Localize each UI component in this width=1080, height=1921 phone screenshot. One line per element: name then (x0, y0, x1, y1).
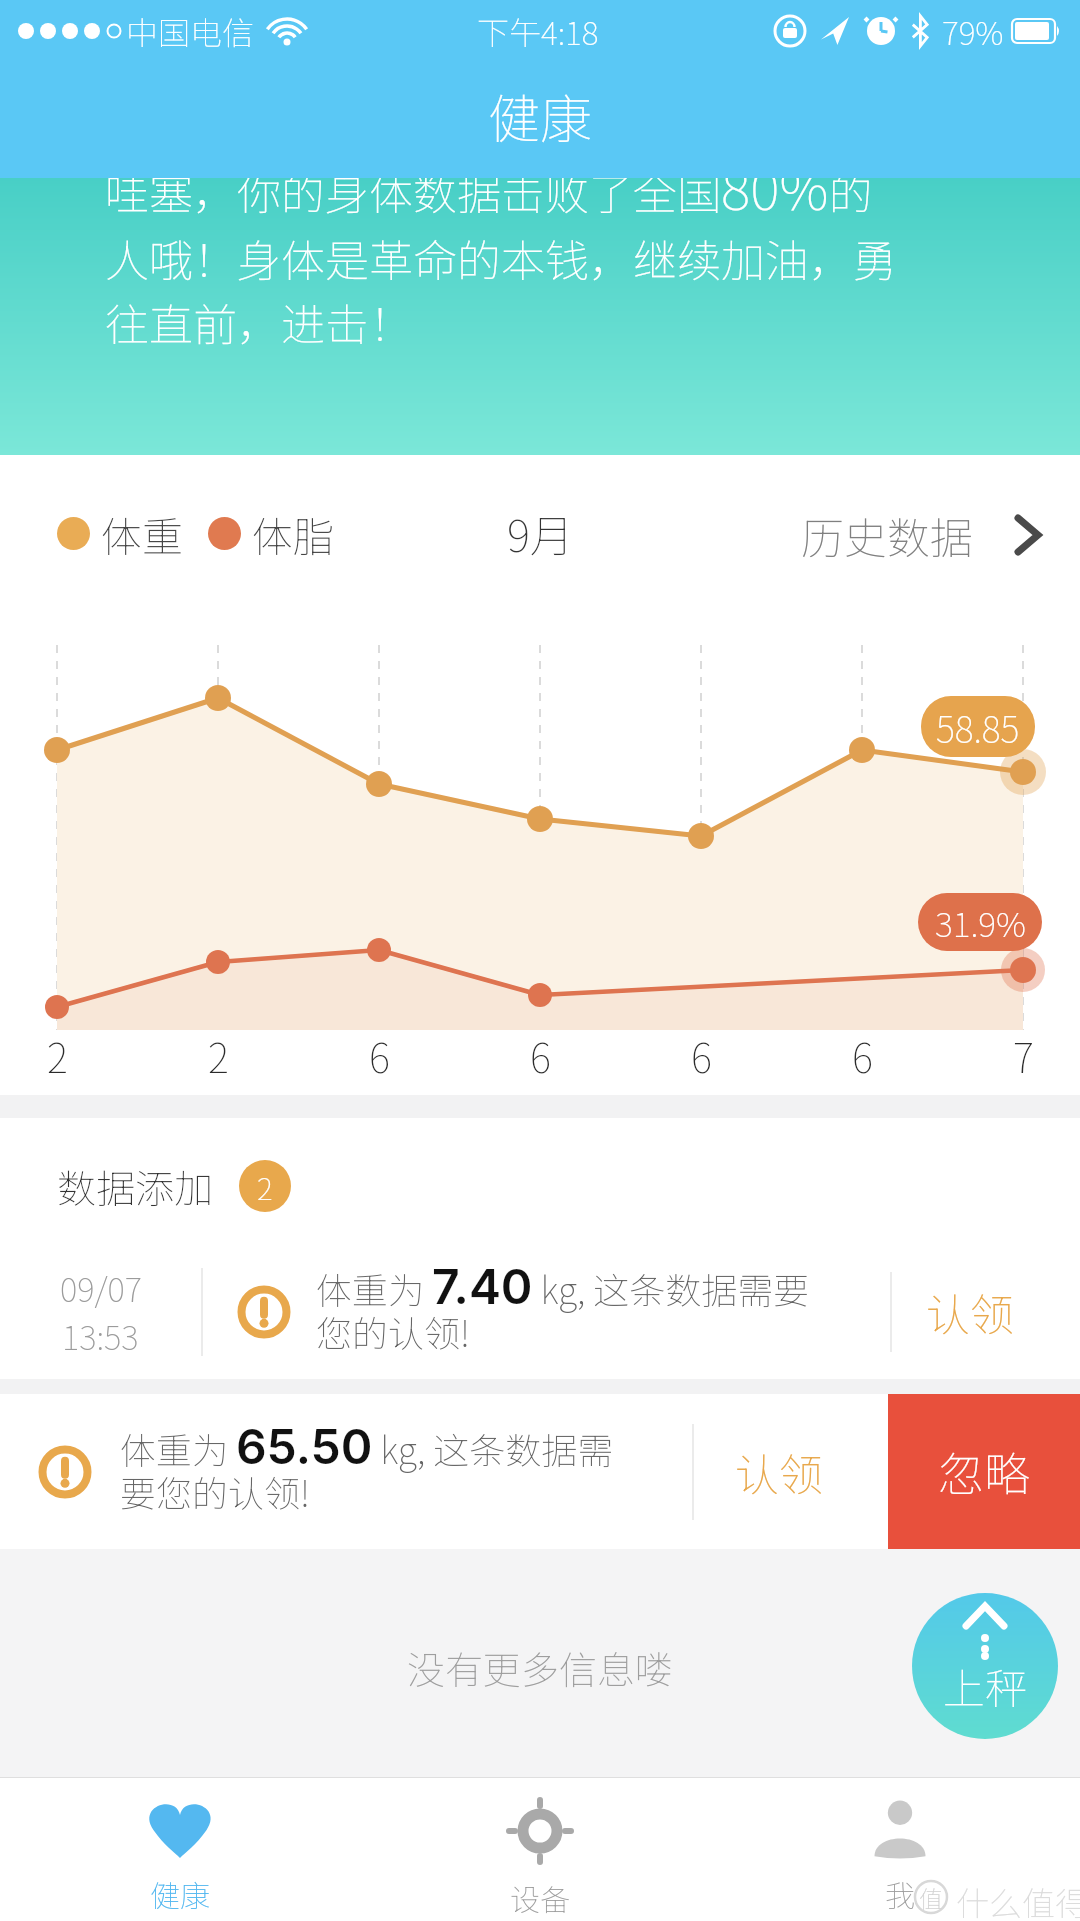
staticText: 没有更多信息喽 (407, 1640, 674, 1695)
button[interactable]: 体重为 65.50 kg, 这条数据需 (0, 1394, 1080, 1549)
staticText: 79% (942, 8, 1004, 54)
staticText: 2 (208, 1027, 229, 1085)
button[interactable]: 忽略 (888, 1394, 1080, 1549)
button[interactable]: 健康 (0, 1778, 360, 1921)
staticText: 人哦！身体是革命的本钱，继续加油，勇 (105, 226, 897, 290)
staticText: 忽略 (938, 1438, 1030, 1505)
staticText: 上秤 (943, 1655, 1028, 1716)
staticText: 6 (852, 1027, 873, 1085)
staticText: 值 (919, 1880, 943, 1914)
staticText: 13:53 (62, 1312, 139, 1360)
staticText: 2 (47, 1027, 68, 1085)
staticText: 往直前，进击！ (105, 290, 413, 354)
staticText: 下午4:18 (477, 8, 599, 54)
staticText: 健康 (488, 78, 593, 153)
staticText: 您的认领! (316, 1305, 470, 1357)
staticText: 体脂 (252, 504, 334, 563)
staticText: 认领 (735, 1440, 823, 1504)
staticText: 体重为 7.40 kg, 这条数据需要 (316, 1257, 810, 1315)
staticText: 什么值得买 (956, 1878, 1080, 1921)
staticText: 2 (257, 1165, 273, 1208)
staticText: 7 (1013, 1027, 1034, 1085)
staticText: 设备 (510, 1876, 570, 1919)
staticText: 历史数据 (801, 504, 973, 566)
staticText: 31.9% (935, 898, 1026, 947)
staticText: 体重为 65.50 kg, 这条数据需 (120, 1417, 614, 1475)
staticText: 中国电信 (126, 8, 255, 54)
staticText: 6 (369, 1027, 390, 1085)
staticText: 09/07 (60, 1264, 142, 1312)
button[interactable]: 我 (720, 1778, 1080, 1921)
staticText: 58.85 (936, 701, 1020, 753)
staticText: 哇塞，你的身体数据击败了全国80%的 (105, 178, 873, 226)
staticText: 我 (885, 1872, 915, 1915)
staticText: 6 (691, 1027, 712, 1085)
staticText: 数据添加 (57, 1158, 214, 1214)
button[interactable]: 上秤 (912, 1593, 1058, 1739)
staticText: 9月 (507, 501, 574, 565)
button[interactable]: 认领 (892, 1244, 1080, 1379)
staticText: 健康 (150, 1872, 210, 1915)
button[interactable]: 认领 (694, 1394, 888, 1549)
button[interactable]: 设备 (360, 1778, 720, 1921)
staticText: 要您的认领! (120, 1465, 310, 1517)
staticText: 体重 (101, 504, 183, 563)
staticText: 认领 (926, 1280, 1014, 1344)
staticText: 6 (530, 1027, 551, 1085)
button[interactable]: 历史数据 (801, 504, 1040, 566)
button[interactable]: 09/07 (0, 1244, 1080, 1379)
